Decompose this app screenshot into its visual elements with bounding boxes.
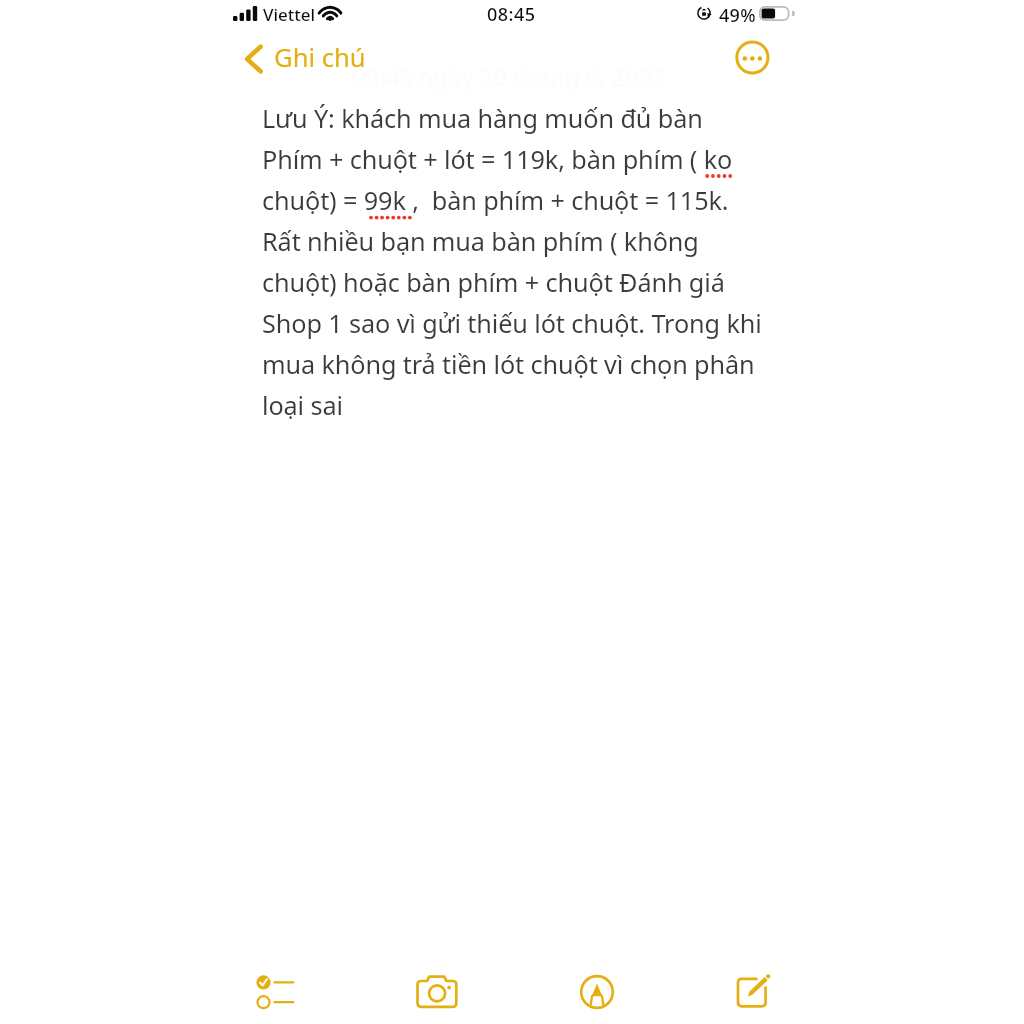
button[interactable]: Markup <box>571 966 623 1018</box>
staticText: Rất nhiều bạn mua bàn phím ( không <box>262 224 699 258</box>
staticText: Lưu Ý: khách mua hàng muốn đủ bàn <box>262 101 703 135</box>
staticText: Phím + chuột + lót = 119k, bàn phím ( ko <box>262 142 733 176</box>
staticText: mua không trả tiền lót chuột vì chọn phâ… <box>262 347 755 381</box>
staticText: chuột) = 99k , bàn phím + chuột = 115k. <box>262 183 729 217</box>
button[interactable]: More options <box>730 35 775 80</box>
button[interactable]: Camera <box>411 966 463 1018</box>
staticText: Viettel <box>263 3 316 26</box>
staticText: chuột) hoặc bàn phím + chuột Đánh giá <box>262 265 725 299</box>
staticText: 08:45 ngày 20 tháng 6, 2023 <box>352 60 666 93</box>
staticText: Shop 1 sao vì gửi thiếu lót chuột. Trong… <box>262 306 762 340</box>
staticText: loại sai <box>262 388 343 422</box>
button[interactable]: Checklist <box>249 966 301 1018</box>
staticText: 49% <box>719 3 756 28</box>
button[interactable]: New note <box>726 966 778 1018</box>
button[interactable]: Back to Ghi chú <box>236 36 372 80</box>
staticText: 08:45 <box>487 2 536 27</box>
staticText: Ghi chú <box>274 40 366 75</box>
